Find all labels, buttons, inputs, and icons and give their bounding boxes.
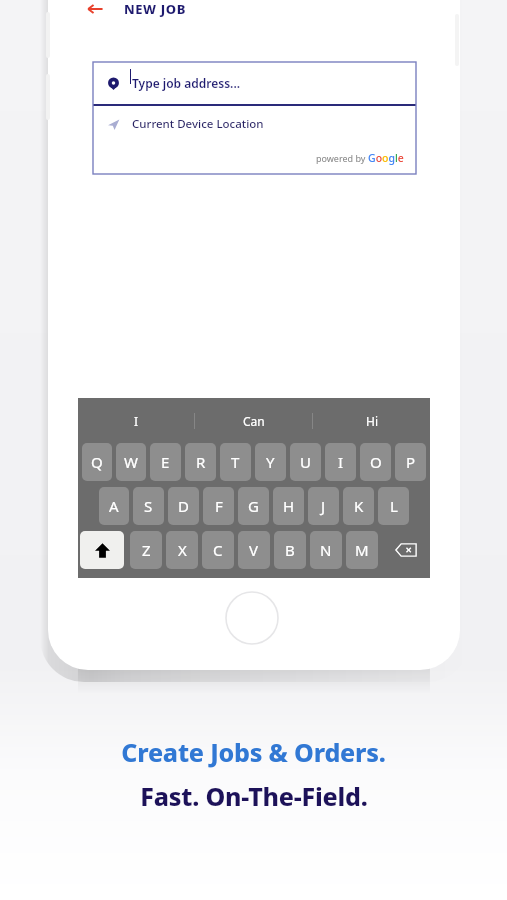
button[interactable]: N — [310, 531, 342, 569]
staticText: L — [390, 496, 398, 516]
staticText: O — [370, 452, 382, 472]
staticText: S — [144, 496, 153, 516]
button[interactable]: T — [220, 443, 251, 481]
button[interactable]: B — [274, 531, 306, 569]
staticText: X — [178, 540, 187, 560]
staticText: M — [355, 540, 369, 560]
button[interactable]: Hi — [313, 398, 430, 443]
staticText: NEW JOB — [124, 0, 186, 18]
button[interactable]: R — [185, 443, 216, 481]
staticText: V — [249, 540, 259, 560]
button[interactable]: Y — [255, 443, 286, 481]
button[interactable]: G — [238, 487, 269, 525]
button[interactable]: I — [78, 398, 194, 443]
staticText: Current Device Location — [132, 116, 264, 132]
button[interactable]: Backspace — [384, 531, 428, 569]
button[interactable]: H — [273, 487, 304, 525]
button[interactable]: L — [378, 487, 409, 525]
button[interactable]: Q — [82, 443, 112, 481]
button[interactable]: Can — [195, 398, 312, 443]
button[interactable]: F — [203, 487, 234, 525]
staticText: powered by — [316, 152, 368, 164]
staticText: J — [321, 496, 326, 516]
button[interactable]: W — [116, 443, 146, 481]
staticText: Hi — [366, 413, 378, 429]
staticText: G — [248, 496, 259, 516]
button[interactable]: E — [150, 443, 181, 481]
button[interactable]: A — [99, 487, 129, 525]
button[interactable]: D — [168, 487, 199, 525]
button[interactable]: Z — [130, 531, 162, 569]
staticText: W — [124, 452, 138, 472]
staticText: Z — [142, 540, 151, 560]
button[interactable]: Back — [78, 0, 112, 22]
staticText: D — [178, 496, 189, 516]
staticText: Y — [266, 452, 275, 472]
staticText: H — [283, 496, 295, 516]
button[interactable]: C — [202, 531, 234, 569]
button[interactable]: I — [325, 443, 356, 481]
staticText: Q — [91, 452, 103, 472]
button[interactable]: O — [360, 443, 391, 481]
button[interactable]: K — [343, 487, 374, 525]
staticText: T — [231, 452, 240, 472]
staticText: P — [406, 452, 416, 472]
staticText: Google — [368, 151, 404, 165]
staticText: U — [300, 452, 311, 472]
staticText: N — [320, 540, 332, 560]
button[interactable]: J — [308, 487, 339, 525]
staticText: I — [134, 413, 139, 429]
staticText: A — [109, 496, 119, 516]
staticText: B — [285, 540, 295, 560]
button[interactable]: Current Device Location — [93, 106, 416, 142]
staticText: I — [338, 452, 344, 472]
staticText: Can — [243, 413, 265, 429]
button[interactable]: M — [346, 531, 378, 569]
staticText: E — [161, 452, 170, 472]
staticText: F — [215, 496, 223, 516]
staticText: R — [196, 452, 206, 472]
staticText: Fast. On-The-Field. — [140, 779, 368, 813]
button[interactable]: X — [166, 531, 198, 569]
button[interactable]: Shift — [80, 531, 124, 569]
button[interactable]: S — [133, 487, 164, 525]
staticText: C — [213, 540, 223, 560]
staticText: Type job address... — [132, 75, 241, 91]
button[interactable]: P — [395, 443, 426, 481]
button[interactable]: U — [290, 443, 321, 481]
staticText: K — [354, 496, 364, 516]
button[interactable]: V — [238, 531, 270, 569]
staticText: Create Jobs & Orders. — [121, 735, 386, 769]
button[interactable]: Type job address... — [93, 62, 416, 104]
